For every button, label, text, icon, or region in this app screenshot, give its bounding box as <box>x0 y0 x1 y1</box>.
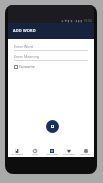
staticText: Favourite <box>19 64 35 69</box>
button[interactable]: Enter Meaning <box>14 54 88 61</box>
staticText: MY WORDS <box>11 153 23 156</box>
button[interactable]: Save word <box>46 120 59 133</box>
staticText: QUIZ <box>32 153 38 156</box>
button[interactable]: Favourite <box>14 64 35 69</box>
staticText: ADD WORD <box>46 153 58 156</box>
button[interactable]: MY WORDS <box>8 146 26 157</box>
staticText: ◈ ▼ ▮ ◐ ◑ ▮ ▮ 10:04 <box>61 18 92 22</box>
button[interactable]: ADD WORD <box>43 146 60 157</box>
staticText: FAVOURITE <box>63 153 75 156</box>
button[interactable]: SETTINGS <box>77 146 94 157</box>
button[interactable]: FAVOURITE <box>60 146 77 157</box>
button[interactable]: QUIZ <box>26 146 43 157</box>
staticText: Enter Meaning <box>14 54 39 59</box>
button[interactable]: Enter Word <box>14 44 88 51</box>
staticText: ADD WORD <box>13 28 36 33</box>
staticText: SETTINGS <box>80 153 91 156</box>
staticText: Enter Word <box>14 44 34 49</box>
